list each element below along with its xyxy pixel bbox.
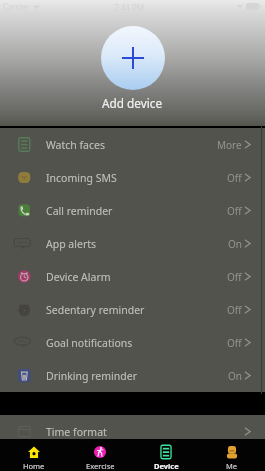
staticText: 7:44 PM	[114, 2, 145, 13]
button[interactable]: Drinking reminder	[0, 359, 265, 392]
staticText: Device Alarm	[46, 270, 111, 284]
button[interactable]: Time format	[0, 415, 265, 448]
button[interactable]: Goal notifications	[0, 326, 265, 359]
button[interactable]: Call reminder	[0, 194, 265, 227]
staticText: Add device	[102, 95, 163, 111]
staticText: Drinking reminder	[46, 369, 137, 383]
staticText: On	[228, 369, 242, 383]
staticText: Off	[227, 171, 242, 185]
button[interactable]: Device	[133, 439, 199, 471]
staticText: Goal notifications	[46, 336, 133, 350]
staticText: Me	[226, 461, 238, 471]
staticText: Off	[227, 336, 242, 350]
button[interactable]: Sedentary reminder	[0, 293, 265, 326]
staticText: App alerts	[46, 237, 97, 251]
staticText: Exercise	[86, 461, 115, 471]
staticText: Off	[227, 204, 242, 218]
staticText: Sedentary reminder	[46, 303, 145, 317]
button[interactable]: Watch faces	[0, 128, 265, 161]
staticText: Time format	[46, 425, 107, 439]
staticText: Call reminder	[46, 204, 113, 218]
button[interactable]: Add device	[101, 26, 165, 90]
button[interactable]: Me	[199, 439, 265, 471]
staticText: Device	[154, 461, 179, 471]
staticText: Home	[23, 461, 45, 471]
staticText: On	[228, 237, 242, 251]
staticText: More	[217, 138, 242, 152]
staticText: Off	[227, 303, 242, 317]
staticText: Carrier	[3, 1, 30, 12]
button[interactable]: Home	[0, 439, 67, 471]
staticText: Incoming SMS	[46, 171, 117, 185]
button[interactable]: App alerts	[0, 227, 265, 260]
staticText: Off	[227, 270, 242, 284]
staticText: Watch faces	[46, 138, 105, 152]
button[interactable]: Exercise	[67, 439, 133, 471]
button[interactable]: Incoming SMS	[0, 161, 265, 194]
button[interactable]: Device Alarm	[0, 260, 265, 293]
